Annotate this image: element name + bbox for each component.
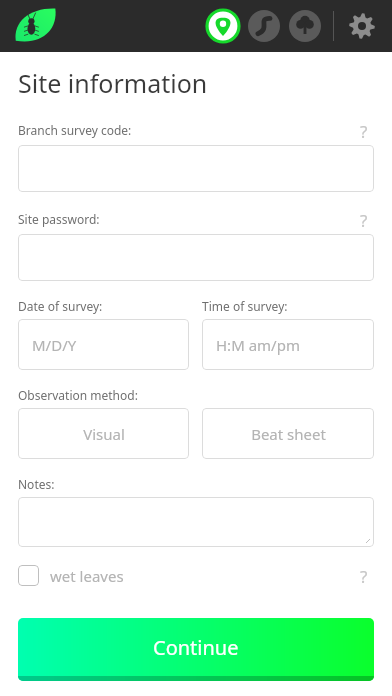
button[interactable]: Settings — [346, 10, 378, 42]
button[interactable]: Tree — [288, 9, 322, 43]
button[interactable]: H:M am/pm — [202, 319, 374, 370]
button[interactable]: Visual — [18, 408, 189, 459]
staticText: Notes: — [18, 476, 55, 492]
staticText: Site password: — [18, 211, 100, 227]
button[interactable]: Help — [354, 209, 374, 229]
staticText: M/D/Y — [32, 335, 77, 355]
staticText: H:M am/pm — [216, 335, 300, 355]
staticText: Site information — [18, 66, 208, 100]
button[interactable]: Help — [354, 565, 374, 585]
button[interactable]: M/D/Y — [18, 319, 189, 370]
staticText: Visual — [83, 424, 125, 444]
staticText: Continue — [153, 634, 239, 661]
button[interactable] — [18, 234, 374, 281]
staticText: Time of survey: — [202, 298, 288, 314]
button[interactable]: App logo — [13, 3, 59, 49]
staticText: wet leaves — [50, 566, 124, 586]
button[interactable]: Site location — [206, 9, 240, 43]
button[interactable]: Help — [354, 120, 374, 140]
staticText: ? — [360, 209, 368, 229]
staticText: ? — [360, 565, 368, 585]
staticText: Observation method: — [18, 387, 138, 403]
staticText: Date of survey: — [18, 298, 103, 314]
button[interactable] — [18, 145, 374, 192]
button[interactable]: wet leaves — [18, 565, 124, 586]
button[interactable]: Continue — [18, 618, 374, 681]
button[interactable]: Survey path — [247, 9, 281, 43]
button[interactable] — [18, 497, 374, 547]
staticText: ? — [360, 120, 368, 140]
staticText: Branch survey code: — [18, 122, 132, 138]
staticText: Beat sheet — [251, 424, 326, 444]
button[interactable]: Beat sheet — [202, 408, 374, 459]
